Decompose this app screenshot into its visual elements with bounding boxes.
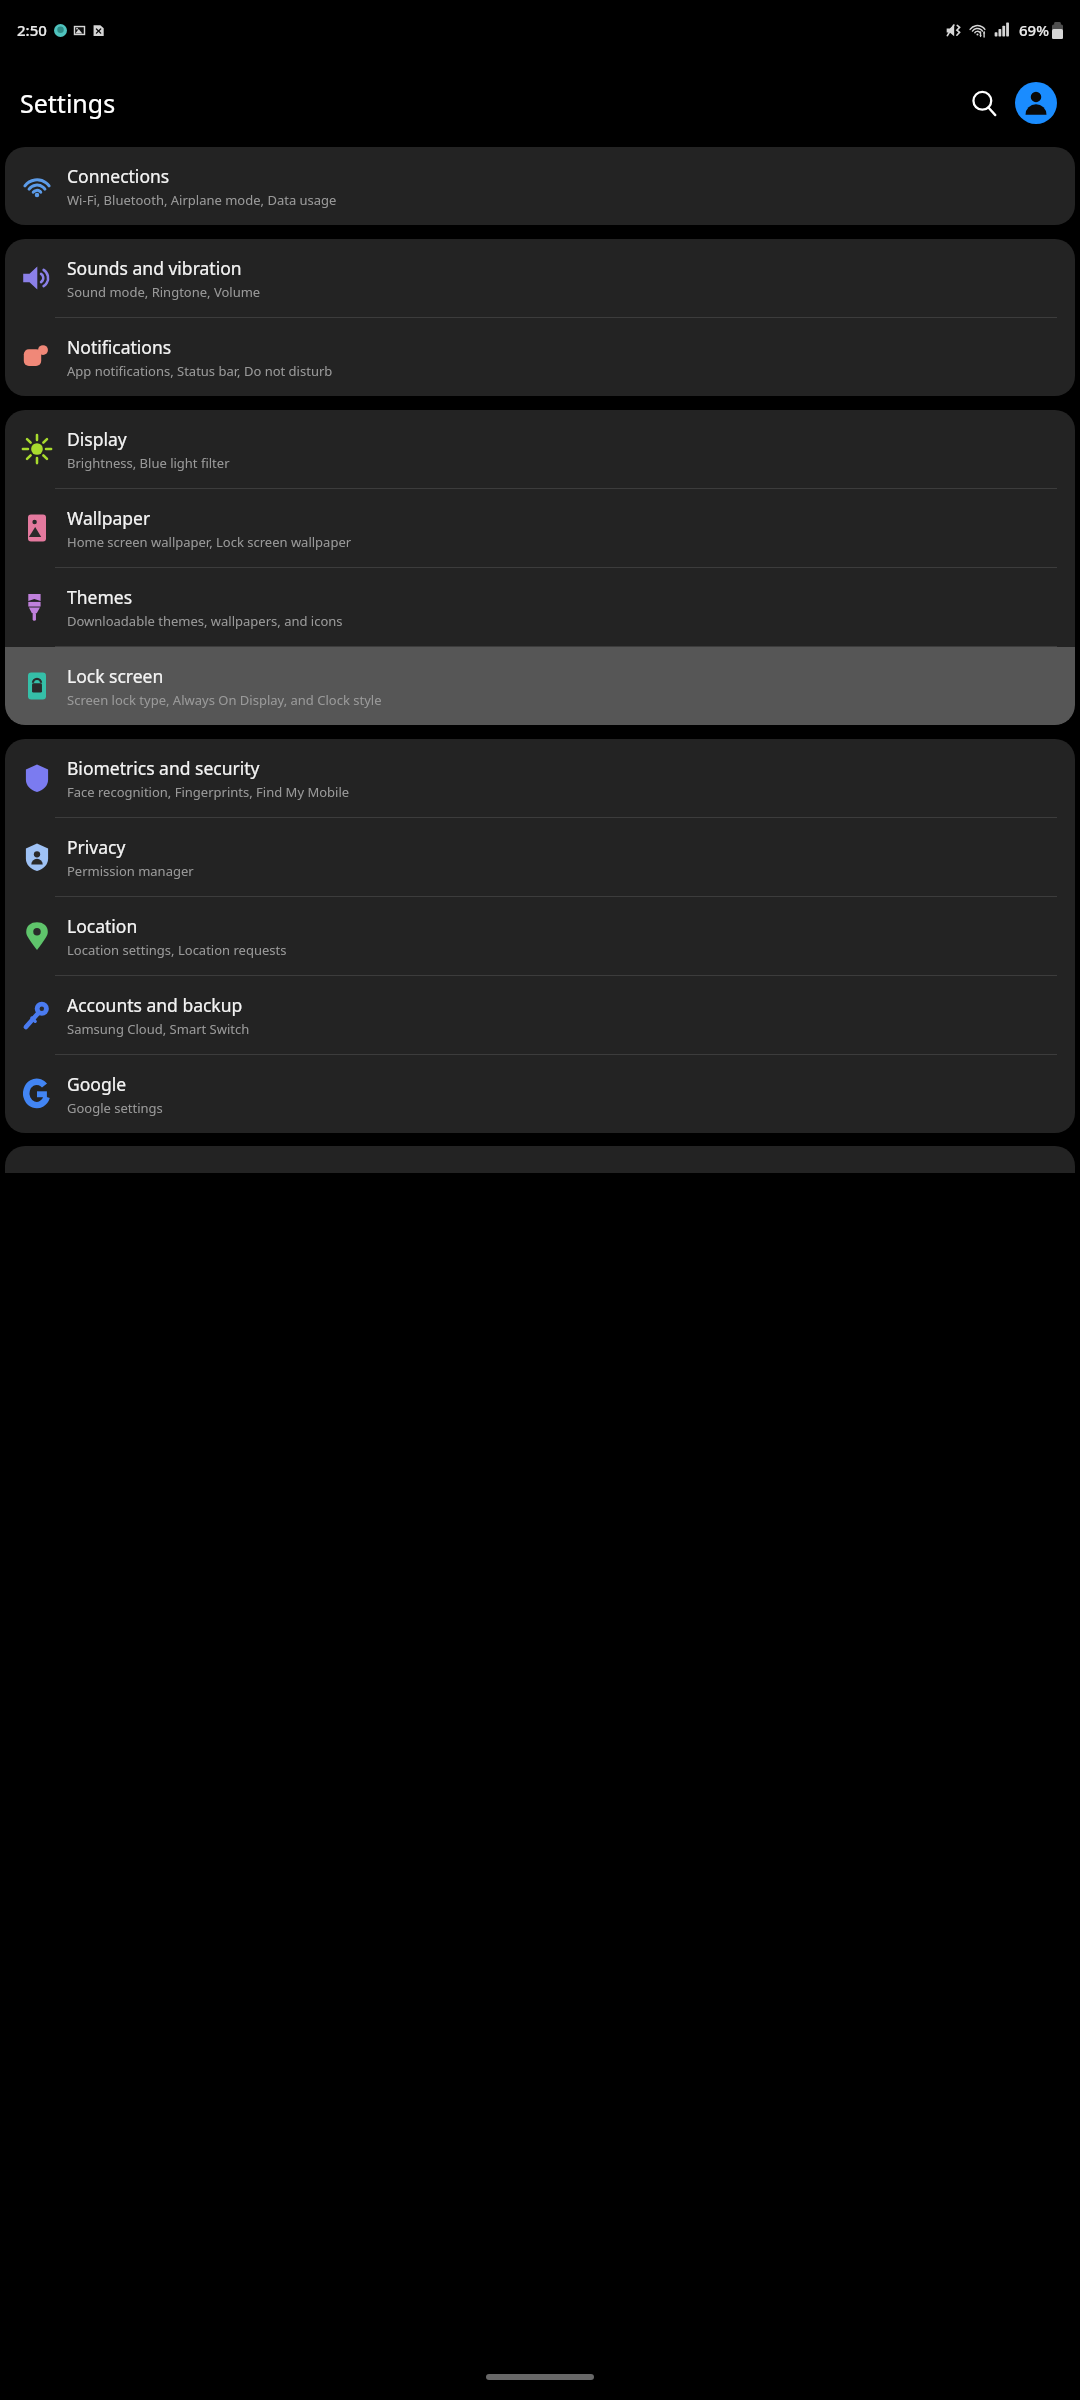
staticText: Accounts and backup (67, 993, 243, 1017)
button[interactable]: Connections (5, 147, 1075, 225)
button[interactable]: Themes (5, 568, 1075, 646)
staticText: Downloadable themes, wallpapers, and ico… (67, 612, 343, 630)
staticText: Lock screen (67, 664, 164, 688)
button[interactable]: Display (5, 410, 1075, 488)
staticText: Location settings, Location requests (67, 941, 287, 959)
staticText: 2:50 (17, 20, 47, 40)
staticText: Sound mode, Ringtone, Volume (67, 283, 261, 301)
staticText: Google settings (67, 1099, 163, 1117)
staticText: Themes (67, 585, 133, 609)
staticText: Wallpaper (67, 506, 151, 530)
staticText: Google (67, 1072, 127, 1096)
staticText: Brightness, Blue light filter (67, 454, 230, 472)
staticText: Face recognition, Fingerprints, Find My … (67, 783, 350, 801)
button[interactable]: Lock screen (5, 647, 1075, 725)
staticText: Home screen wallpaper, Lock screen wallp… (67, 533, 352, 551)
button[interactable]: Notifications (5, 318, 1075, 396)
button[interactable]: Google (5, 1055, 1075, 1133)
staticText: Biometrics and security (67, 756, 260, 780)
staticText: Screen lock type, Always On Display, and… (67, 691, 382, 709)
button[interactable]: Biometrics and security (5, 739, 1075, 817)
staticText: Connections (67, 164, 170, 188)
staticText: Sounds and vibration (67, 256, 242, 280)
staticText: Permission manager (67, 862, 194, 880)
staticText: Notifications (67, 335, 172, 359)
button[interactable]: Accounts and backup (5, 976, 1075, 1054)
button[interactable]: Privacy (5, 818, 1075, 896)
button[interactable]: Location (5, 897, 1075, 975)
staticText: Display (67, 427, 127, 451)
staticText: 69% (1019, 20, 1049, 40)
button[interactable]: Sounds and vibration (5, 239, 1075, 317)
button[interactable]: Account (1012, 79, 1060, 127)
staticText: Privacy (67, 835, 126, 859)
staticText: Wi-Fi, Bluetooth, Airplane mode, Data us… (67, 191, 337, 209)
button[interactable]: Search (960, 79, 1008, 127)
staticText: Samsung Cloud, Smart Switch (67, 1020, 250, 1038)
staticText: Location (67, 914, 138, 938)
button[interactable]: Wallpaper (5, 489, 1075, 567)
staticText: Settings (20, 86, 116, 120)
staticText: App notifications, Status bar, Do not di… (67, 362, 333, 380)
